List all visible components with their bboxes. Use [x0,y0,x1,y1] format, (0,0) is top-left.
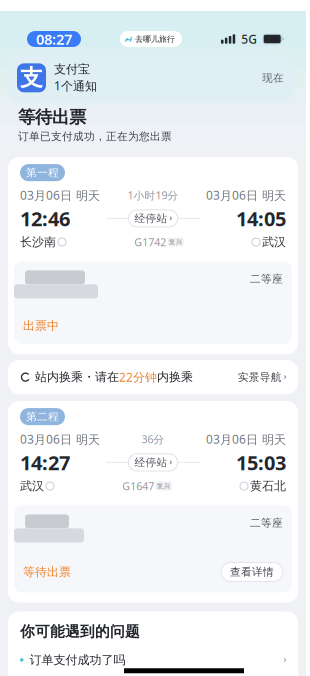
staticText: 黄石北 [250,479,286,493]
staticText: 等待出票 [18,107,86,128]
staticText: 实景导航 [238,371,282,384]
button[interactable]: 经停站 [128,210,178,227]
staticText: 经停站 [134,212,167,225]
staticText: 1个通知 [54,78,97,94]
staticText: 36分 [141,432,164,446]
staticText: 12:46 [20,205,70,232]
staticText: 现在 [262,71,284,84]
staticText: 武汉 [20,479,44,493]
button[interactable]: 订单支付成功了吗 [20,640,286,667]
staticText: 武汉 [262,235,286,249]
staticText: 二等座 [250,516,283,529]
staticText: 订单已支付成功，正在为您出票 [18,130,172,143]
staticText: 14:05 [236,205,286,232]
staticText: 复兴 [157,482,171,490]
staticText: 订单支付成功了吗 [29,652,125,667]
staticText: 第一程 [26,166,59,179]
staticText: 查看详情 [230,565,274,578]
staticText: 经停站 [134,456,167,469]
staticText: 支付宝 [54,62,90,77]
staticText: 内换乘 [157,370,193,384]
staticText: 03月06日 明天 [20,431,100,447]
staticText: 站内换乘・请在 [31,370,119,384]
staticText: 03月06日 明天 [20,187,100,203]
button[interactable]: 查看详情 [221,562,283,581]
staticText: G1647 [122,479,154,493]
staticText: 1小时19分 [127,188,178,202]
staticText: 03月06日 明天 [206,431,286,447]
staticText: 第二程 [26,410,59,423]
staticText: 去哪儿旅行 [135,34,175,44]
button[interactable]: 支 [7,53,295,103]
staticText: 5G [241,31,257,47]
staticText: 支 [20,64,43,92]
staticText: 复兴 [169,238,183,246]
staticText: 你可能遇到的问题 [20,622,140,640]
staticText: 03月06日 明天 [206,187,286,203]
staticText: 08:27 [36,29,72,49]
staticText: 长沙南 [20,235,56,249]
staticText: 22分钟 [119,369,157,385]
staticText: G1742 [134,235,166,249]
staticText: 15:03 [236,449,286,476]
staticText: 出票中 [23,318,59,333]
button[interactable]: 站内换乘・请在 [8,360,298,394]
staticText: 等待出票 [23,565,71,579]
staticText: 二等座 [250,272,283,285]
staticText: 14:27 [20,449,70,476]
button[interactable]: 经停站 [128,454,178,471]
